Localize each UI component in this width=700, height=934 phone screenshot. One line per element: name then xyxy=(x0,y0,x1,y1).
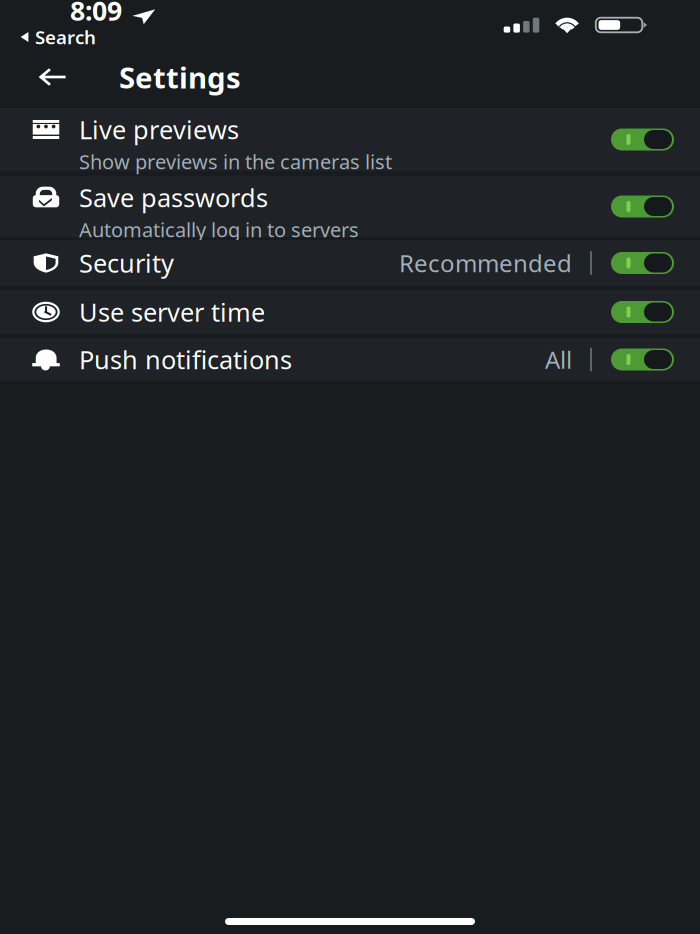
button[interactable]: Live previews xyxy=(0,108,700,171)
staticText: Settings xyxy=(119,57,241,96)
button[interactable]: Back xyxy=(0,54,78,100)
staticText: Live previews xyxy=(79,112,239,146)
staticText: Push notifications xyxy=(79,343,292,376)
button[interactable]: Push notifications xyxy=(0,338,700,381)
staticText: Security xyxy=(79,246,174,280)
staticText: Automatically log in to servers xyxy=(79,216,359,243)
staticText: Use server time xyxy=(79,295,265,329)
button[interactable]: Security xyxy=(0,240,700,286)
staticText: 8:09 xyxy=(70,0,122,28)
staticText: All xyxy=(545,344,572,375)
button[interactable]: Save passwords xyxy=(0,176,700,237)
staticText: Save passwords xyxy=(79,180,268,214)
button[interactable]: Search xyxy=(0,28,130,46)
button[interactable]: Use server time xyxy=(0,290,700,334)
staticText: Show previews in the cameras list xyxy=(79,148,392,175)
staticText: Search xyxy=(35,25,96,49)
staticText: Recommended xyxy=(399,247,572,279)
